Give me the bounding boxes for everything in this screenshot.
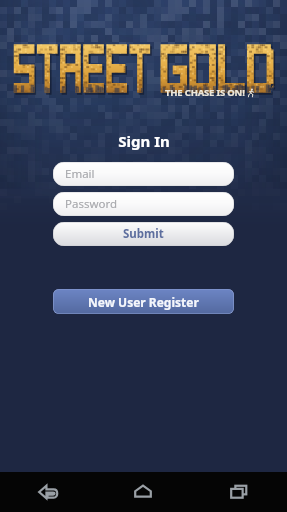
- button[interactable]: Recent apps: [191, 472, 287, 512]
- staticText: THE CHASE IS ON!: [165, 86, 245, 99]
- staticText: Submit: [123, 226, 164, 242]
- button[interactable]: Password: [53, 192, 234, 216]
- staticText: New User Register: [88, 294, 199, 310]
- button[interactable]: Submit: [53, 222, 234, 246]
- staticText: Email: [65, 166, 95, 182]
- button[interactable]: Home: [95, 472, 191, 512]
- button[interactable]: Email: [53, 162, 234, 186]
- staticText: Sign In: [118, 131, 170, 151]
- button[interactable]: New User Register: [53, 289, 234, 314]
- button[interactable]: Back: [0, 472, 95, 512]
- staticText: Password: [65, 196, 118, 212]
